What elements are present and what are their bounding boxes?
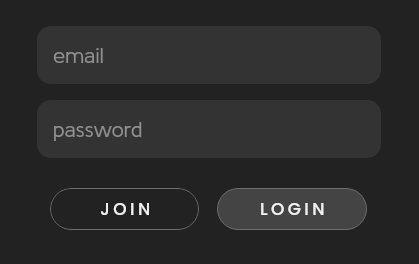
staticText: email (53, 43, 104, 68)
staticText: password (53, 117, 143, 142)
button[interactable]: email (37, 26, 381, 84)
staticText: JOIN (100, 197, 154, 221)
button[interactable]: JOIN (50, 188, 199, 230)
button[interactable]: password (37, 100, 381, 158)
button[interactable]: LOGIN (217, 188, 367, 230)
staticText: LOGIN (260, 197, 328, 221)
